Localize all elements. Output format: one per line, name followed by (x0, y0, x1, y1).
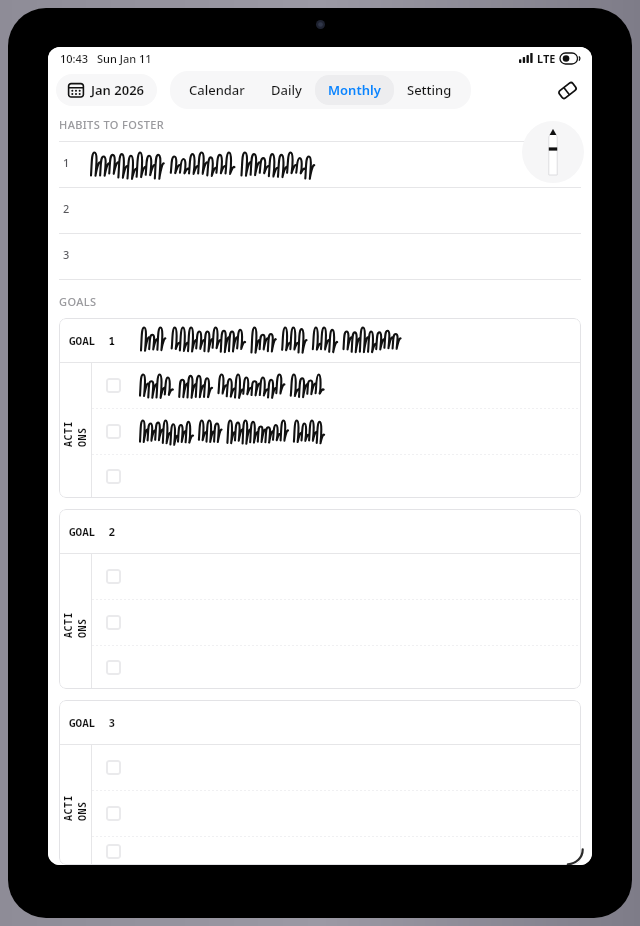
staticText: Calendar (189, 81, 245, 99)
staticText: 10:43 (60, 51, 89, 66)
button[interactable]: Eraser (550, 73, 584, 107)
button[interactable]: Toggle action (106, 660, 121, 675)
staticText: ACTIONS (61, 415, 89, 447)
button[interactable]: Toggle action (106, 569, 121, 584)
button[interactable]: Monthly (315, 75, 394, 105)
button[interactable]: Jan 2026 (56, 74, 157, 106)
staticText: GOAL 2 (69, 524, 116, 539)
staticText: GOAL 1 (69, 333, 116, 348)
button[interactable]: Toggle action (106, 424, 121, 439)
button[interactable]: Toggle action (106, 760, 121, 775)
button[interactable]: Toggle action (106, 378, 121, 393)
staticText: Monthly (328, 81, 381, 99)
staticText: LTE (537, 51, 556, 66)
staticText: Setting (407, 81, 452, 99)
button[interactable]: GOAL 2 (59, 509, 581, 689)
button[interactable]: GOAL 3 (59, 700, 581, 865)
button[interactable]: Toggle action (106, 844, 121, 859)
button[interactable]: Setting (394, 75, 465, 105)
staticText: GOALS (59, 294, 97, 309)
button[interactable]: Toggle action (106, 615, 121, 630)
button[interactable]: GOAL 1 (59, 318, 581, 498)
staticText: Daily (271, 81, 302, 99)
button[interactable]: Daily (258, 75, 315, 105)
staticText: 3 (63, 247, 70, 262)
button[interactable]: Pen tool (522, 121, 584, 183)
staticText: Sun Jan 11 (97, 51, 152, 66)
staticText: 2 (63, 201, 70, 216)
staticText: HABITS TO FOSTER (59, 117, 165, 132)
button[interactable]: Toggle action (106, 806, 121, 821)
staticText: GOAL 3 (69, 715, 116, 730)
button[interactable]: Toggle action (106, 469, 121, 484)
staticText: 1 (63, 155, 70, 170)
staticText: Jan 2026 (91, 81, 145, 99)
staticText: ACTIONS (61, 789, 89, 821)
staticText: ACTIONS (61, 606, 89, 638)
button[interactable]: Calendar (176, 75, 258, 105)
